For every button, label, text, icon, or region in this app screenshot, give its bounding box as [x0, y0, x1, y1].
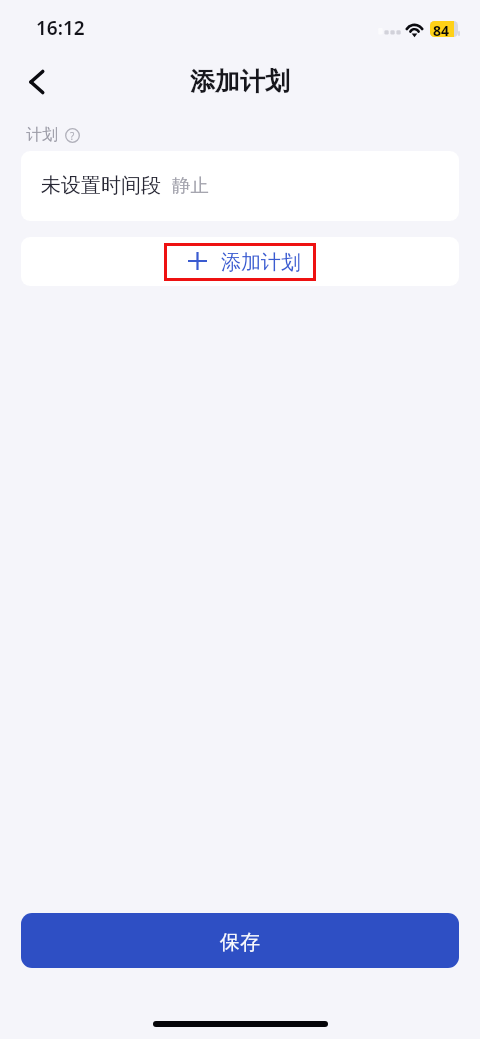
staticText: 保存	[220, 930, 260, 955]
staticText: 添加计划	[190, 66, 290, 97]
button[interactable]: 未设置时间段	[21, 151, 459, 221]
staticText: 计划	[26, 125, 58, 145]
staticText: 16:12	[36, 15, 85, 41]
staticText: 未设置时间段	[41, 173, 161, 198]
button[interactable]: 添加计划	[164, 243, 316, 281]
staticText: ?	[70, 129, 75, 143]
staticText: 静止	[172, 174, 209, 197]
button[interactable]: Help	[65, 128, 80, 143]
staticText: 添加计划	[221, 250, 301, 275]
staticText: 84	[433, 21, 450, 37]
button[interactable]: Back	[17, 62, 57, 102]
button[interactable]: 保存	[21, 913, 459, 968]
